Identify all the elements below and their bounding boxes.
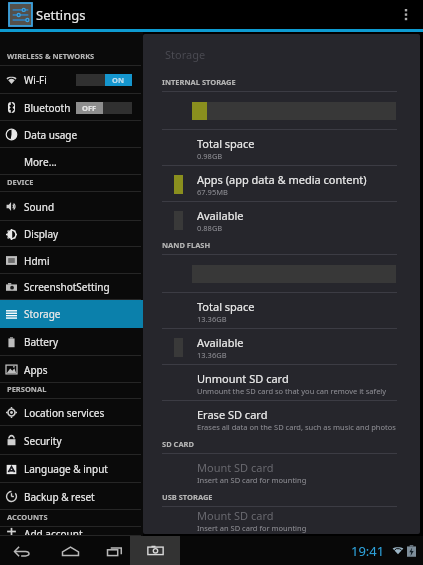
button[interactable]: Bluetooth	[0, 94, 143, 121]
staticText: WIRELESS & NETWORKS	[7, 51, 95, 61]
staticText: Apps (app data & media content)	[197, 172, 367, 187]
button[interactable]: Data usage	[0, 121, 143, 148]
staticText: Backup & reset	[24, 490, 95, 504]
staticText: Unmount the SD card so that you can remo…	[197, 386, 387, 396]
staticText: Total space	[197, 299, 255, 314]
button[interactable]: Total space	[143, 293, 420, 329]
staticText: 0.88GB	[197, 223, 223, 233]
staticText: 13.36GB	[197, 314, 227, 324]
staticText: Battery	[24, 335, 59, 349]
button[interactable]: Wi-Fi	[0, 66, 143, 94]
staticText: Display	[24, 227, 59, 241]
staticText: OFF	[82, 103, 97, 113]
button[interactable]: Battery	[0, 328, 143, 356]
button[interactable]: Available	[143, 329, 420, 365]
staticText: PERSONAL	[7, 384, 47, 394]
staticText: Settings	[36, 6, 86, 24]
button[interactable]: Unmount SD card	[143, 365, 420, 401]
button[interactable]: Mount SD card	[143, 454, 420, 490]
staticText: ON	[112, 75, 125, 85]
button[interactable]: Sound	[0, 192, 143, 221]
staticText: INTERNAL STORAGE	[162, 77, 236, 87]
button[interactable]: More…	[0, 148, 143, 175]
button[interactable]: Language & input	[0, 455, 143, 483]
button[interactable]: Security	[0, 426, 143, 455]
staticText: Bluetooth	[24, 101, 71, 115]
staticText: Hdmi	[24, 254, 50, 268]
staticText: Data usage	[24, 128, 78, 142]
button[interactable]: Backup & reset	[0, 483, 143, 510]
staticText: SD CARD	[162, 439, 194, 449]
staticText: Total space	[197, 136, 255, 151]
staticText: 67.95MB	[197, 187, 228, 197]
staticText: DEVICE	[7, 177, 34, 187]
button[interactable]: Apps	[0, 356, 143, 383]
button[interactable]: Add account	[0, 527, 143, 536]
button[interactable]: Screenshot	[130, 536, 180, 565]
staticText: More…	[24, 155, 57, 169]
button[interactable]: Back	[10, 539, 34, 563]
staticText: Mount SD card	[197, 508, 274, 523]
staticText: 0.98GB	[197, 151, 223, 161]
button[interactable]: Mount SD card	[143, 507, 420, 534]
staticText: 19:41	[351, 542, 385, 560]
staticText: Insert an SD card for mounting	[197, 523, 307, 533]
staticText: Security	[24, 434, 62, 448]
staticText: Insert an SD card for mounting	[197, 475, 307, 485]
staticText: Location services	[24, 406, 105, 420]
button[interactable]: Available	[143, 202, 420, 238]
button[interactable]: Storage	[0, 300, 143, 328]
staticText: ACCOUNTS	[7, 512, 48, 522]
button[interactable]: More options	[391, 0, 421, 29]
staticText: Sound	[24, 200, 55, 214]
staticText: Storage	[24, 307, 61, 321]
button[interactable]: Hdmi	[0, 247, 143, 274]
staticText: Available	[197, 335, 244, 350]
button[interactable]: Recents	[103, 539, 127, 563]
button[interactable]: Apps (app data & media content)	[143, 166, 420, 202]
staticText: Storage	[165, 47, 206, 62]
staticText: 13.36GB	[197, 350, 227, 360]
staticText: Unmount SD card	[197, 371, 289, 386]
staticText: Add account	[24, 527, 83, 536]
staticText: USB STORAGE	[162, 492, 213, 502]
button[interactable]: Location services	[0, 399, 143, 426]
staticText: NAND FLASH	[162, 240, 211, 250]
button[interactable]: Erase SD card	[143, 401, 420, 437]
staticText: Language & input	[24, 462, 108, 476]
staticText: Wi-Fi	[24, 73, 47, 87]
button[interactable]: ScreenshotSetting	[0, 274, 143, 300]
staticText: Erase SD card	[197, 407, 268, 422]
staticText: ScreenshotSetting	[24, 280, 110, 294]
button[interactable]: Total space	[143, 130, 420, 166]
button[interactable]: Home	[58, 539, 82, 563]
staticText: Mount SD card	[197, 460, 274, 475]
staticText: Erases all data on the SD card, such as …	[197, 422, 396, 432]
button[interactable]: Display	[0, 221, 143, 247]
staticText: Available	[197, 208, 244, 223]
staticText: Apps	[24, 363, 48, 377]
